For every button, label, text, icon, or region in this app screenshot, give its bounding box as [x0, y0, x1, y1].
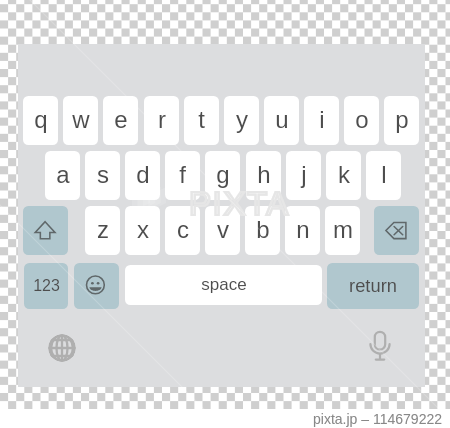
button[interactable]: return	[327, 263, 419, 309]
button[interactable]: Shift	[23, 206, 68, 255]
button[interactable]: j	[286, 151, 321, 200]
staticText: y	[236, 106, 248, 133]
staticText: x	[137, 216, 149, 243]
staticText: n	[296, 216, 310, 243]
button[interactable]: o	[344, 96, 379, 145]
staticText: t	[198, 106, 205, 133]
button[interactable]: e	[103, 96, 138, 145]
staticText: j	[301, 161, 307, 188]
button[interactable]: l	[366, 151, 401, 200]
staticText: r	[158, 106, 166, 133]
button[interactable]: c	[165, 206, 200, 255]
staticText: a	[56, 161, 70, 188]
button[interactable]: w	[63, 96, 98, 145]
staticText: g	[216, 161, 230, 188]
button[interactable]: p	[384, 96, 419, 145]
staticText: o	[355, 106, 369, 133]
button[interactable]: k	[326, 151, 361, 200]
button[interactable]: h	[246, 151, 281, 200]
button[interactable]: z	[85, 206, 120, 255]
button[interactable]: u	[264, 96, 299, 145]
button[interactable]: d	[125, 151, 160, 200]
staticText: l	[381, 161, 387, 188]
button[interactable]: space	[125, 265, 322, 305]
button[interactable]: Voice input	[364, 328, 396, 364]
staticText: PIXTA	[189, 185, 290, 222]
staticText: 123	[33, 277, 60, 295]
staticText: space	[201, 275, 247, 294]
staticText: q	[34, 106, 48, 133]
button[interactable]: x	[125, 206, 160, 255]
button[interactable]: t	[184, 96, 219, 145]
button[interactable]: m	[325, 206, 360, 255]
button[interactable]: i	[304, 96, 339, 145]
staticText: w	[72, 106, 90, 133]
button[interactable]: Change keyboard language	[46, 332, 78, 364]
button[interactable]: a	[45, 151, 80, 200]
staticText: f	[179, 161, 186, 188]
button[interactable]: y	[224, 96, 259, 145]
button[interactable]: Emoji	[74, 263, 119, 309]
staticText: u	[275, 106, 289, 133]
button[interactable]: r	[144, 96, 179, 145]
staticText: p	[395, 106, 409, 133]
button[interactable]: f	[165, 151, 200, 200]
staticText: b	[256, 216, 270, 243]
staticText: c	[177, 216, 189, 243]
staticText: i	[319, 106, 325, 133]
button[interactable]: g	[205, 151, 240, 200]
staticText: d	[136, 161, 150, 188]
staticText: s	[97, 161, 109, 188]
button[interactable]: n	[285, 206, 320, 255]
staticText: v	[217, 216, 229, 243]
button[interactable]: s	[85, 151, 120, 200]
button[interactable]: 123	[24, 263, 68, 309]
staticText: k	[338, 161, 350, 188]
staticText: pixta.jp – 114679222	[242, 411, 442, 427]
staticText: z	[97, 216, 109, 243]
staticText: e	[114, 106, 128, 133]
button[interactable]: b	[245, 206, 280, 255]
button[interactable]: Backspace	[374, 206, 419, 255]
staticText: m	[333, 216, 353, 243]
staticText: h	[257, 161, 271, 188]
button[interactable]: v	[205, 206, 240, 255]
staticText: return	[349, 275, 397, 295]
button[interactable]: q	[23, 96, 58, 145]
